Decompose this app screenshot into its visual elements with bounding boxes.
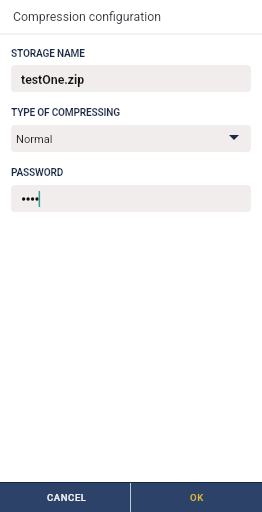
button[interactable]: testOne.zip xyxy=(11,65,251,92)
staticText: TYPE OF COMPRESSING xyxy=(11,107,120,119)
staticText: testOne.zip xyxy=(21,73,85,87)
button[interactable]: OK xyxy=(131,483,262,512)
staticText: OK xyxy=(190,492,204,503)
button[interactable] xyxy=(11,185,251,212)
staticText: PASSWORD xyxy=(11,167,64,179)
button[interactable]: Normal xyxy=(11,125,251,152)
staticText: Normal xyxy=(16,133,53,146)
staticText: Compression configuration xyxy=(13,10,161,24)
other: Select compression type xyxy=(229,135,239,140)
staticText: CANCEL xyxy=(47,492,87,503)
staticText: STORAGE NAME xyxy=(11,48,85,60)
button[interactable]: CANCEL xyxy=(0,483,130,512)
